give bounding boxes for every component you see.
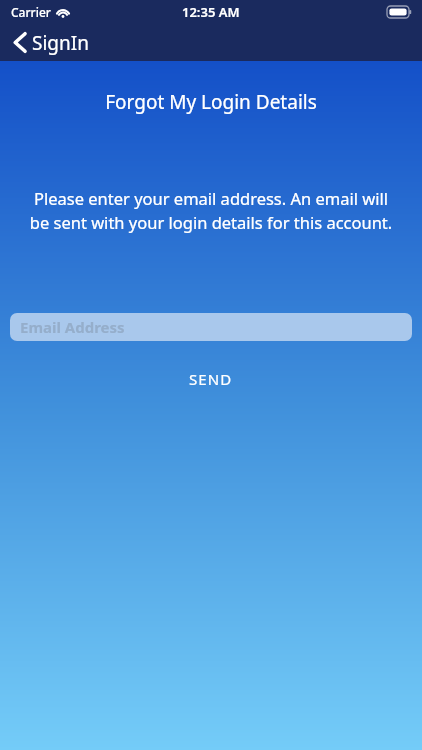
staticText: Please enter your email address. An emai… bbox=[24, 187, 398, 234]
staticText: Carrier bbox=[11, 4, 51, 20]
button[interactable]: SEND bbox=[167, 363, 255, 395]
other: Back bbox=[14, 33, 26, 52]
button[interactable]: Back bbox=[0, 24, 103, 61]
button[interactable]: Email Address bbox=[10, 313, 412, 341]
staticText: Email Address bbox=[20, 317, 125, 337]
staticText: SEND bbox=[189, 369, 233, 389]
staticText: 12:35 AM bbox=[182, 3, 240, 21]
staticText: SignIn bbox=[32, 30, 89, 56]
staticText: Forgot My Login Details bbox=[0, 89, 422, 115]
